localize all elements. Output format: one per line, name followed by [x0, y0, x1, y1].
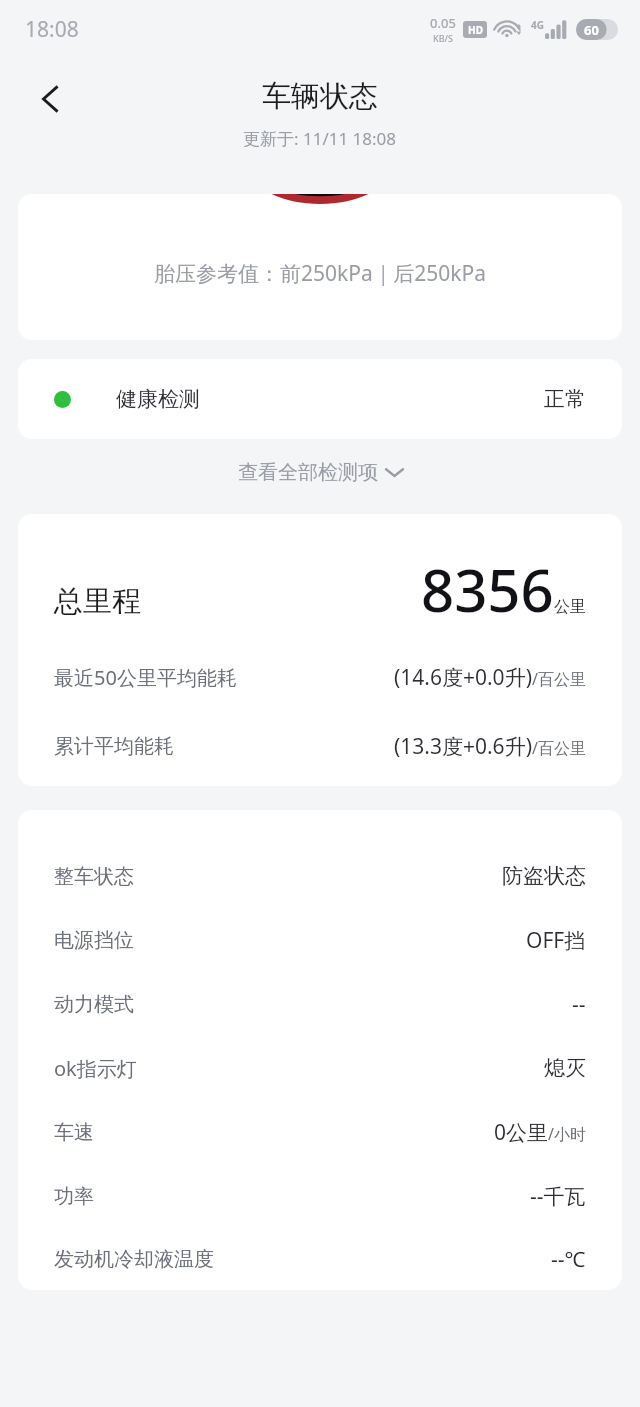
staticText: OFF挡 [526, 926, 586, 955]
button[interactable]: 功率 [54, 1164, 586, 1228]
button[interactable]: 发动机冷却液温度 [54, 1228, 586, 1290]
staticText: 累计平均能耗 [54, 734, 174, 759]
button[interactable]: 胎压参考值：前250kPa｜后250kPa [18, 194, 622, 340]
staticText: -- [572, 990, 586, 1019]
button[interactable]: 电源挡位 [54, 908, 586, 972]
staticText: 功率 [54, 1184, 94, 1209]
staticText: 防盗状态 [502, 863, 586, 889]
staticText: ok指示灯 [54, 1055, 137, 1082]
staticText: KB/S [433, 32, 453, 44]
staticText: 60 [584, 21, 599, 39]
staticText: 健康检测 [116, 386, 200, 412]
staticText: (14.6度+0.0升)/百公里 [394, 663, 586, 692]
staticText: (13.3度+0.6升)/百公里 [394, 732, 586, 761]
staticText: 整车状态 [54, 864, 134, 889]
staticText: 最近50公里平均能耗 [54, 664, 237, 691]
staticText: 电源挡位 [54, 928, 134, 953]
staticText: 4G [531, 18, 544, 32]
staticText: 胎压参考值：前250kPa｜后250kPa [154, 259, 487, 288]
button[interactable]: 动力模式 [54, 972, 586, 1036]
staticText: 总里程 [54, 583, 141, 620]
staticText: 发动机冷却液温度 [54, 1247, 214, 1272]
button[interactable]: 查看全部检测项 [0, 451, 640, 493]
button[interactable]: 总里程 [18, 514, 622, 786]
button[interactable]: 整车状态 [54, 844, 586, 908]
button[interactable]: 健康检测 [18, 359, 622, 439]
staticText: 查看全部检测项 [238, 460, 378, 485]
button[interactable]: Back [18, 66, 84, 132]
button[interactable]: ok指示灯 [54, 1036, 586, 1100]
button[interactable]: 车速 [54, 1100, 586, 1164]
staticText: 车辆状态 [262, 78, 378, 115]
staticText: 更新于: 11/11 18:08 [243, 127, 397, 150]
staticText: 车速 [54, 1120, 94, 1145]
staticText: --℃ [551, 1245, 586, 1274]
staticText: HD [468, 23, 483, 37]
staticText: 熄灭 [544, 1055, 586, 1081]
staticText: 动力模式 [54, 992, 134, 1017]
staticText: 8356 [421, 550, 554, 629]
staticText: 0公里/小时 [494, 1118, 586, 1147]
staticText: 18:08 [25, 15, 79, 44]
staticText: --千瓦 [530, 1182, 586, 1211]
staticText: 正常 [544, 386, 586, 412]
staticText: 公里 [554, 597, 586, 617]
staticText: 0.05 [430, 14, 456, 32]
